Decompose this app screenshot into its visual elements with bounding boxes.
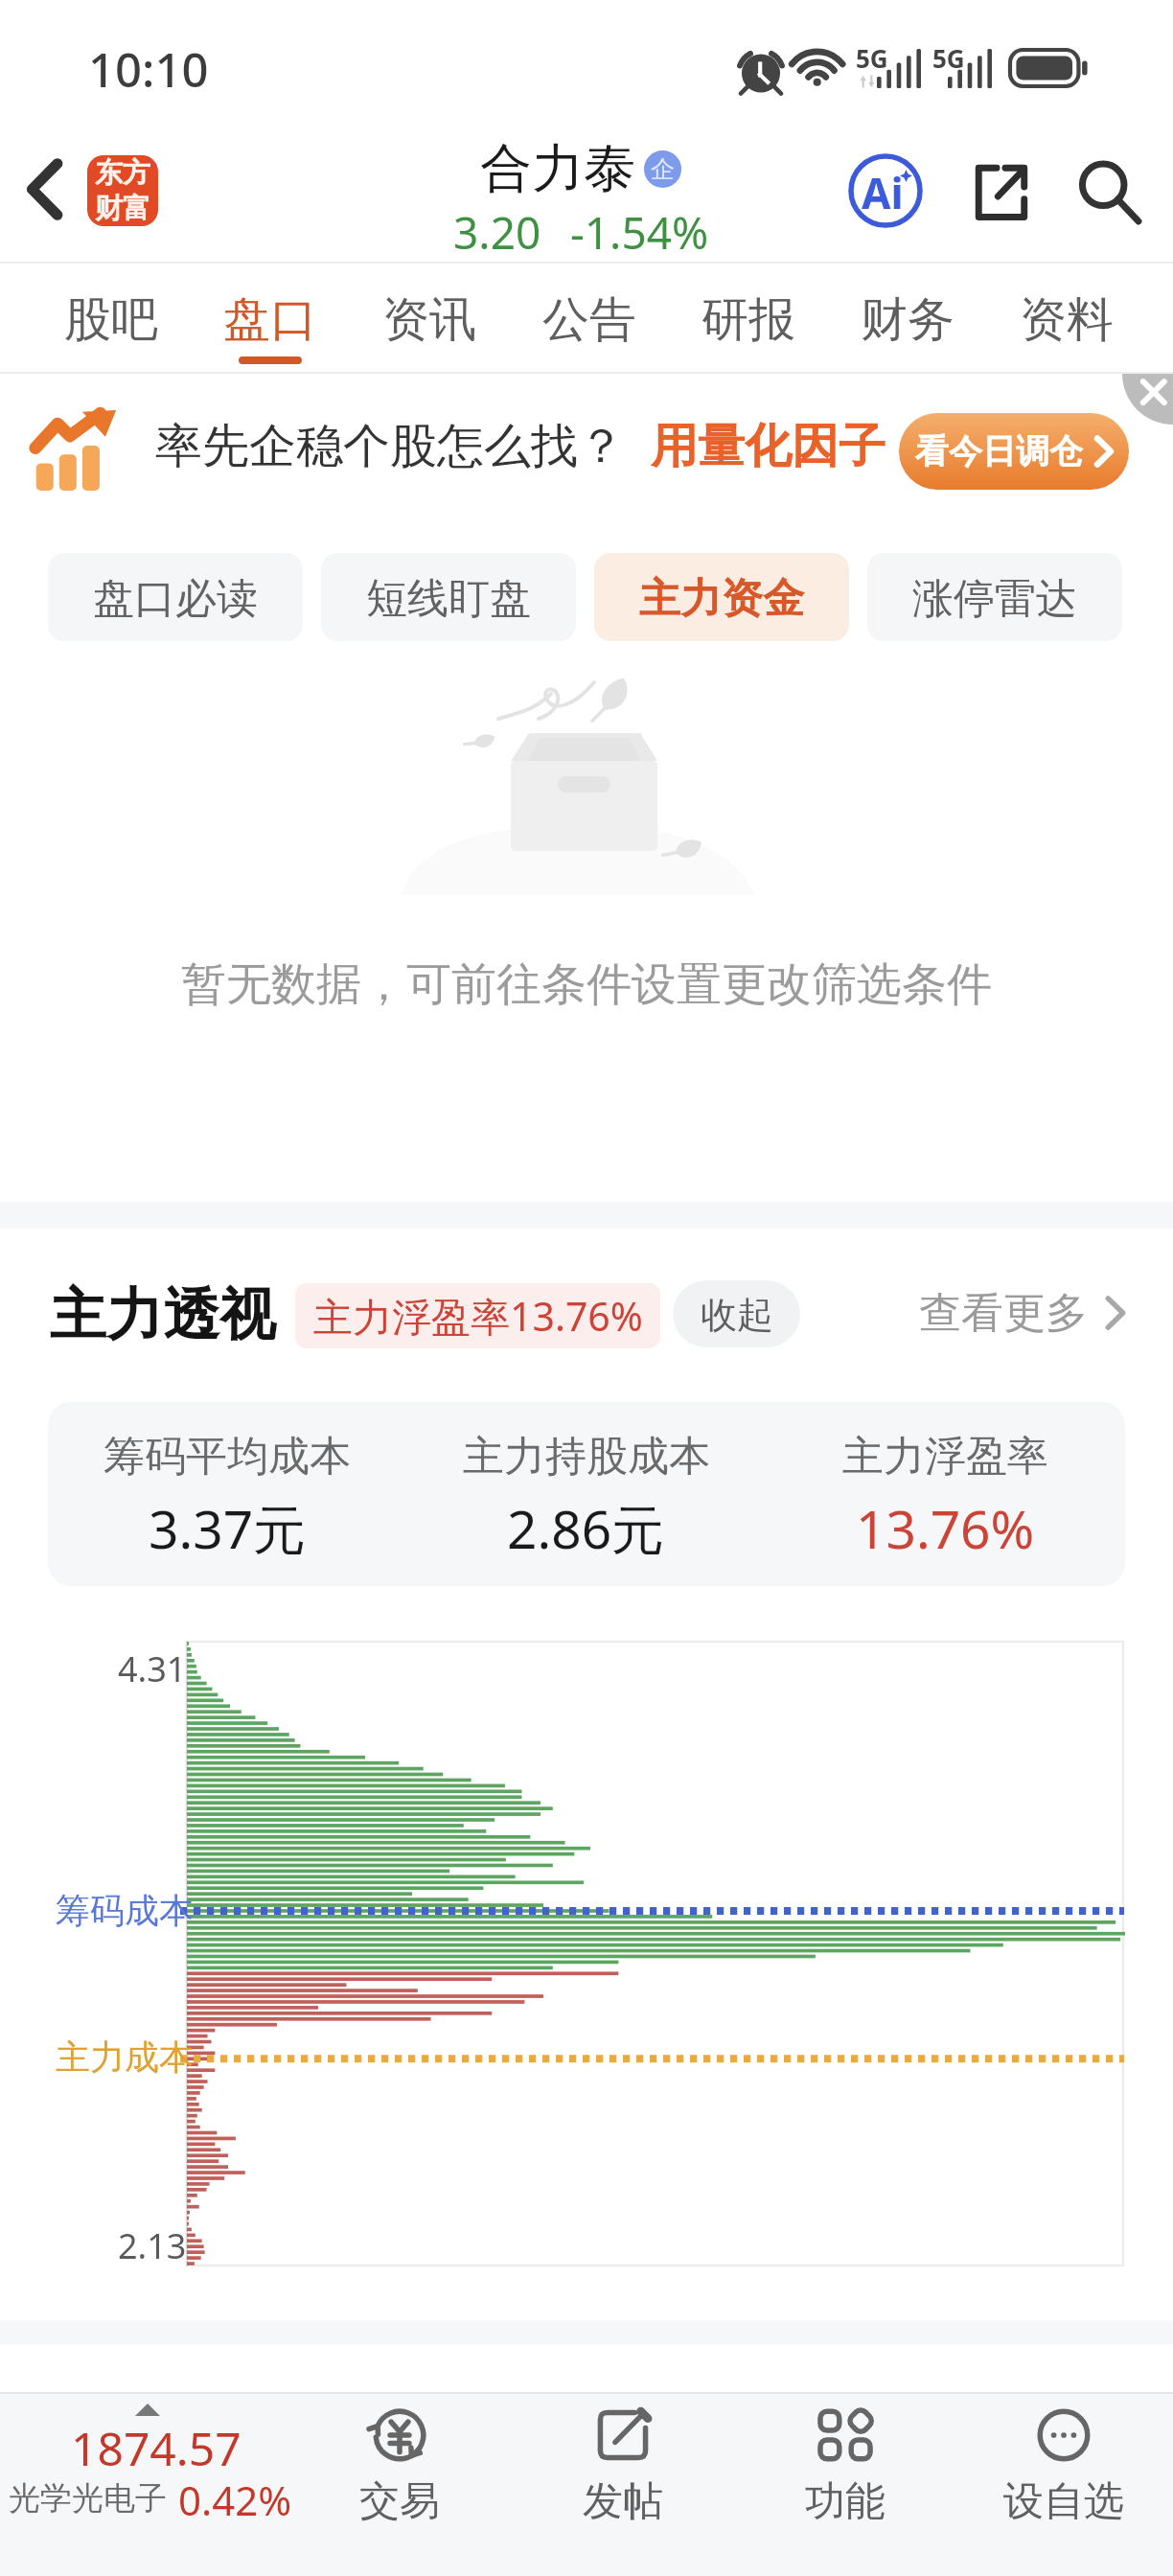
staticText: -1.54% (570, 202, 709, 263)
staticText: 盘口必读 (93, 573, 258, 625)
staticText: 光学光电子 (9, 2478, 167, 2518)
staticText: 主力透视 (50, 1279, 276, 1350)
button[interactable]: Search (1070, 153, 1149, 232)
button[interactable]: 资料 (987, 264, 1146, 372)
staticText: 设自选 (1003, 2476, 1124, 2527)
button[interactable]: 股吧 (32, 264, 191, 372)
staticText: 率先企稳个股怎么找？ (155, 417, 625, 476)
staticText: 主力持股成本 (463, 1431, 710, 1483)
staticText: 5G (856, 41, 888, 75)
staticText: 0.42% (178, 2472, 292, 2527)
staticText: 筹码成本 (56, 1889, 194, 1932)
button[interactable]: 公告 (510, 264, 669, 372)
staticText: Ai (862, 164, 904, 221)
staticText: 主力资金 (639, 573, 804, 625)
button[interactable]: 查看更多 (919, 1275, 1126, 1351)
staticText: 公告 (542, 290, 636, 350)
staticText: 财务 (861, 290, 954, 350)
button[interactable]: 盘口必读 (48, 553, 303, 641)
staticText: 涨停雷达 (912, 573, 1077, 625)
staticText: 合力泰 (480, 136, 635, 201)
staticText: 暂无数据，可前往条件设置更改筛选条件 (181, 956, 992, 1013)
staticText: 东方 (95, 155, 150, 191)
button[interactable]: 涨停雷达 (867, 553, 1122, 641)
button[interactable]: 设自选 (963, 2392, 1164, 2576)
button[interactable]: 功能 (745, 2392, 946, 2576)
staticText: 发帖 (583, 2476, 663, 2527)
staticText: 5G (932, 41, 965, 75)
button[interactable]: 收起 (673, 1280, 800, 1347)
button[interactable]: 主力浮盈率13.76% (295, 1283, 660, 1348)
staticText: 主力浮盈率 (842, 1431, 1048, 1483)
staticText: 1874.57 (71, 2417, 241, 2479)
staticText: 3.37元 (149, 1492, 307, 1564)
button[interactable]: East Money (87, 155, 158, 226)
staticText: 企 (651, 154, 675, 184)
button[interactable]: Close ad (1122, 374, 1173, 425)
button[interactable]: 财务 (828, 264, 987, 372)
staticText: 主力浮盈率13.76% (313, 1289, 643, 1343)
button[interactable]: 资讯 (350, 264, 509, 372)
staticText: 3.20 (453, 202, 541, 263)
staticText: 财富 (95, 191, 150, 226)
button[interactable]: 主力资金 (594, 553, 849, 641)
staticText: 研报 (701, 290, 795, 350)
button[interactable]: 1874.57 (0, 2392, 326, 2576)
button[interactable]: 短线盯盘 (321, 553, 576, 641)
staticText: 功能 (805, 2476, 885, 2527)
staticText: 4.31 (118, 1645, 187, 1692)
staticText: 查看更多 (919, 1287, 1088, 1340)
button[interactable]: 发帖 (522, 2392, 724, 2576)
button[interactable]: 研报 (669, 264, 828, 372)
staticText: 用量化因子 (651, 417, 885, 476)
button[interactable]: 盘口 (191, 264, 350, 372)
staticText: 13.76% (856, 1492, 1035, 1564)
staticText: 盘口 (223, 290, 317, 350)
staticText: 筹码平均成本 (103, 1431, 351, 1483)
button[interactable]: Back (13, 157, 77, 220)
staticText: 资讯 (382, 290, 476, 350)
button[interactable]: 交易 (299, 2392, 500, 2576)
staticText: 短线盯盘 (366, 573, 531, 625)
staticText: 主力成本 (56, 2035, 194, 2079)
staticText: 看今日调仓 (915, 430, 1083, 472)
button[interactable]: Share (961, 153, 1040, 232)
staticText: 资料 (1020, 290, 1114, 350)
staticText: 10:10 (88, 37, 209, 102)
staticText: 2.13 (118, 2222, 187, 2269)
staticText: 收起 (701, 1292, 773, 1338)
staticText: 2.86元 (507, 1492, 665, 1564)
button[interactable]: AI assistant (847, 152, 924, 229)
button[interactable]: 看今日调仓 (899, 413, 1129, 490)
staticText: 交易 (359, 2476, 440, 2527)
staticText: 股吧 (64, 290, 158, 350)
